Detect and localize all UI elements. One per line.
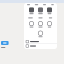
- button[interactable]: More: [38, 31, 43, 37]
- button[interactable]: Share option: [27, 7, 36, 14]
- button[interactable]: Action: [27, 21, 36, 27]
- button[interactable]: List item: [24, 40, 57, 44]
- button[interactable]: Primary action: [1, 41, 9, 45]
- button[interactable]: List item: [24, 44, 57, 48]
- button[interactable]: Action: [45, 21, 54, 27]
- button[interactable]: Share option: [36, 7, 45, 14]
- button[interactable]: Share option: [45, 7, 54, 14]
- button[interactable]: Action: [36, 21, 45, 27]
